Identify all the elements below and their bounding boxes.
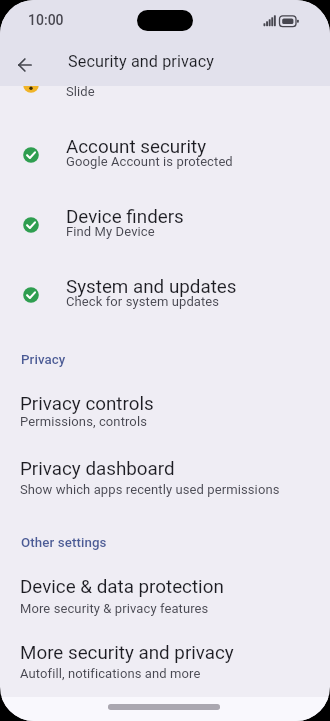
button[interactable] xyxy=(108,704,220,710)
staticText: More security and privacy xyxy=(20,642,234,664)
staticText: Slide xyxy=(66,84,95,99)
button[interactable]: System and updates xyxy=(0,260,330,330)
staticText: Other settings xyxy=(21,535,107,551)
staticText: Google Account is protected xyxy=(66,154,233,169)
staticText: System and updates xyxy=(66,276,237,298)
button[interactable]: Screen lock xyxy=(0,50,330,120)
staticText: Device finders xyxy=(66,206,184,228)
staticText: More security & privacy features xyxy=(20,601,209,616)
staticText: Permissions, controls xyxy=(20,414,147,429)
staticText: Account security xyxy=(66,136,207,158)
button[interactable]: Privacy controls xyxy=(0,377,330,441)
staticText: Check for system updates xyxy=(66,294,220,309)
button[interactable]: Privacy dashboard xyxy=(0,442,330,506)
staticText: Device & data protection xyxy=(20,576,224,598)
staticText: 10:00 xyxy=(28,12,64,28)
staticText: Privacy xyxy=(21,352,66,368)
staticText: Security and privacy xyxy=(68,52,215,71)
button[interactable]: Device finders xyxy=(0,190,330,260)
staticText: Show which apps recently used permission… xyxy=(20,482,280,497)
staticText: Autofill, notifications and more xyxy=(20,666,201,681)
button[interactable]: Account security xyxy=(0,120,330,190)
staticText: Privacy dashboard xyxy=(20,458,175,480)
button[interactable] xyxy=(8,48,42,82)
staticText: Screen lock xyxy=(66,66,163,88)
staticText: Find My Device xyxy=(66,224,155,239)
staticText: Privacy controls xyxy=(20,393,154,415)
button[interactable]: More security and privacy xyxy=(0,626,330,690)
button[interactable]: Device & data protection xyxy=(0,560,330,624)
